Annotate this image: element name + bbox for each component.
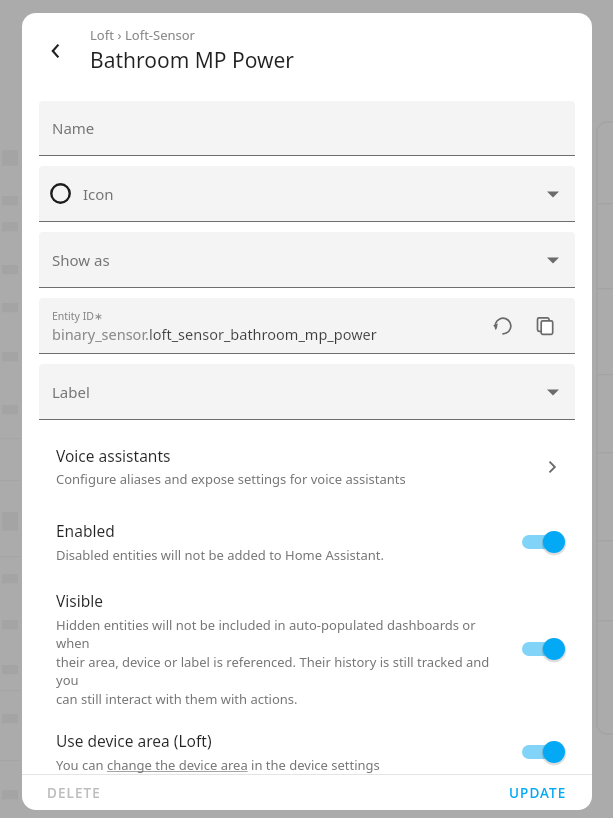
button[interactable]: UPDATE bbox=[507, 778, 569, 808]
staticText: Show as bbox=[52, 250, 110, 270]
button[interactable]: Icon bbox=[39, 166, 575, 222]
staticText: Voice assistants bbox=[56, 445, 171, 466]
staticText: Visible bbox=[56, 590, 103, 611]
button[interactable]: Entity ID∗ bbox=[39, 298, 575, 354]
button[interactable]: Name bbox=[39, 101, 575, 156]
button[interactable]: Copy bbox=[527, 308, 563, 344]
staticText: can still interact with them with action… bbox=[56, 690, 298, 708]
staticText: UPDATE bbox=[509, 784, 567, 802]
button[interactable]: Label bbox=[39, 364, 575, 420]
staticText: binary_sensor.loft_sensor_bathroom_mp_po… bbox=[52, 324, 377, 344]
staticText: Hidden entities will not be included in … bbox=[56, 616, 503, 652]
staticText: their area, device or label is reference… bbox=[56, 653, 503, 689]
button[interactable]: DELETE bbox=[45, 778, 103, 808]
staticText: Loft bbox=[90, 26, 114, 44]
staticText: Use device area (Loft) bbox=[56, 730, 212, 751]
button[interactable]: Use device area (Loft) bbox=[39, 730, 575, 774]
staticText: Bathroom MP Power bbox=[90, 46, 294, 75]
staticText: Disabled entities will not be added to H… bbox=[56, 546, 384, 564]
staticText: Label bbox=[52, 382, 90, 402]
staticText: Loft-Sensor bbox=[125, 26, 195, 44]
button[interactable]: Voice assistants bbox=[39, 437, 575, 498]
staticText: › bbox=[114, 26, 125, 44]
button[interactable]: Visible bbox=[39, 590, 575, 708]
button[interactable]: Restore bbox=[485, 308, 521, 344]
staticText: You can change the device area in the de… bbox=[56, 756, 380, 774]
staticText: Enabled bbox=[56, 520, 115, 541]
staticText: Entity ID∗ bbox=[52, 309, 103, 323]
button[interactable]: Enabled bbox=[39, 520, 575, 564]
button[interactable]: Show as bbox=[39, 232, 575, 288]
staticText: Icon bbox=[83, 184, 114, 204]
button[interactable]: Toggle bbox=[513, 523, 571, 561]
staticText: DELETE bbox=[47, 784, 101, 802]
staticText: Configure aliases and expose settings fo… bbox=[56, 470, 406, 488]
button[interactable]: Back bbox=[36, 31, 76, 71]
button[interactable]: Toggle bbox=[513, 733, 571, 771]
button[interactable]: Toggle bbox=[513, 630, 571, 668]
staticText: Name bbox=[52, 118, 95, 138]
